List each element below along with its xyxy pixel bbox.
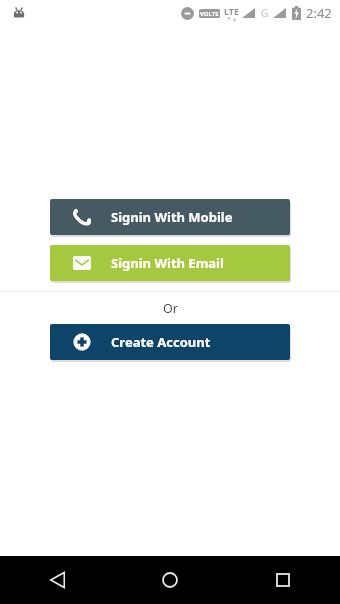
button[interactable]: Create Account — [50, 324, 290, 360]
button[interactable]: Home — [130, 556, 210, 604]
staticText: Or — [163, 300, 178, 317]
staticText: Create Account — [111, 333, 211, 351]
staticText: Signin With Mobile — [111, 208, 233, 226]
staticText: G — [261, 6, 269, 20]
button[interactable]: Phone — [50, 199, 290, 235]
staticText: 2:42 — [306, 4, 332, 22]
staticText: VOLTE — [200, 10, 219, 18]
other: Create Account — [73, 333, 91, 351]
button[interactable]: Back — [17, 556, 97, 604]
other: Phone — [74, 209, 90, 225]
button[interactable]: Recent apps — [243, 556, 323, 604]
button[interactable]: Email — [50, 245, 290, 281]
other: Email — [73, 256, 91, 270]
staticText: Signin With Email — [111, 254, 224, 272]
staticText: LTE — [224, 5, 240, 17]
